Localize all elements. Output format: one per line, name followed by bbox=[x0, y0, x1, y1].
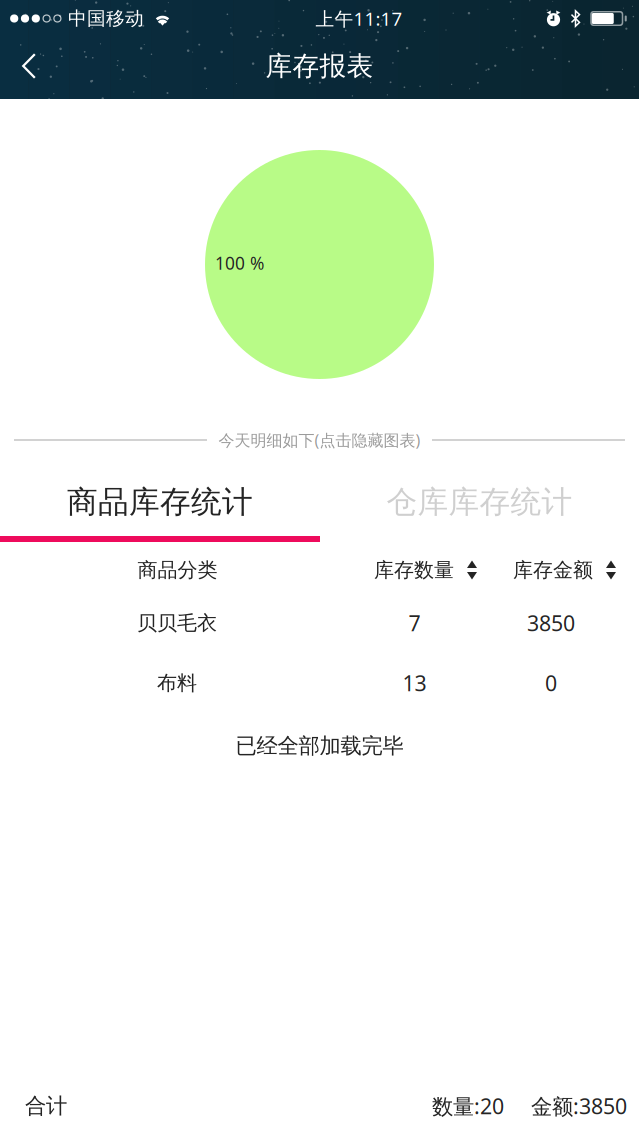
button[interactable]: 商品库存统计 bbox=[0, 484, 320, 520]
staticText: 数量:20 bbox=[432, 1092, 504, 1120]
staticText: 已经全部加载完毕 bbox=[235, 733, 403, 759]
button[interactable]: 仓库库存统计 bbox=[320, 484, 639, 520]
staticText: 100 % bbox=[215, 251, 264, 274]
staticText: 商品分类 bbox=[137, 558, 217, 582]
staticText: 合计 bbox=[25, 1093, 67, 1119]
staticText: 今天明细如下(点击隐藏图表) bbox=[218, 429, 420, 451]
staticText: 中国移动 bbox=[68, 7, 144, 30]
staticText: 0 bbox=[545, 669, 557, 697]
staticText: 库存金额 bbox=[513, 558, 593, 582]
staticText: 金额:3850 bbox=[531, 1092, 627, 1120]
staticText: 库存数量 bbox=[374, 558, 454, 582]
staticText: 贝贝毛衣 bbox=[137, 611, 217, 635]
button[interactable]: 按库存数量排序 bbox=[361, 553, 490, 587]
staticText: 3850 bbox=[527, 609, 575, 637]
staticText: 7 bbox=[408, 609, 420, 637]
staticText: 13 bbox=[402, 669, 426, 697]
button[interactable]: 商品分类 bbox=[0, 553, 361, 587]
staticText: 库存报表 bbox=[265, 50, 373, 82]
button[interactable]: Back bbox=[0, 35, 64, 97]
button[interactable]: 按库存金额排序 bbox=[490, 553, 639, 587]
staticText: 仓库库存统计 bbox=[386, 483, 572, 521]
staticText: 上午11:17 bbox=[315, 6, 402, 31]
staticText: 商品库存统计 bbox=[67, 483, 253, 521]
staticText: 布料 bbox=[157, 671, 197, 695]
